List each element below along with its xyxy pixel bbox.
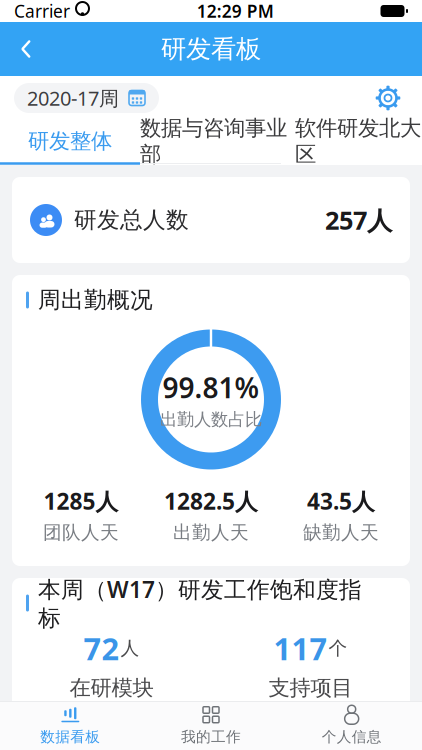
staticText: 出勤人天 <box>173 521 249 544</box>
staticText: 72 <box>83 628 119 669</box>
button[interactable]: 数据与咨询事业部 <box>140 120 287 162</box>
button[interactable]: 数据看板 <box>0 702 141 750</box>
staticText: 1282.5人 <box>164 486 258 516</box>
staticText: 个人信息 <box>322 728 382 746</box>
staticText: 个 <box>328 637 347 660</box>
staticText: 支持项目 <box>268 675 352 701</box>
staticText: 在研模块 <box>69 675 153 701</box>
button[interactable]: 个人信息 <box>281 702 422 750</box>
staticText: 257人 <box>325 203 392 237</box>
staticText: Carrier <box>14 0 70 22</box>
staticText: 1285人 <box>43 486 118 516</box>
staticText: 研发看板 <box>161 33 261 64</box>
staticText: 研发总人数 <box>74 206 189 234</box>
staticText: 新增及修改代码行数 <box>30 733 219 750</box>
staticText: 缺勤人天 <box>303 521 379 544</box>
staticText: 数据与咨询事业部 <box>140 115 287 167</box>
staticText: 软件研发北大区 <box>295 115 421 167</box>
staticText: 出勤人数占比 <box>160 409 262 430</box>
staticText: 研发整体 <box>28 128 112 154</box>
staticText: 99.81% <box>162 369 259 406</box>
button[interactable]: 2020-17周 <box>14 83 159 113</box>
staticText: 本周（W17）研发工作饱和度指标 <box>38 574 362 632</box>
button[interactable]: Settings <box>368 78 408 118</box>
staticText: 人 <box>120 637 139 660</box>
staticText: 团队人天 <box>43 521 119 544</box>
button[interactable]: 软件研发北大区 <box>287 120 421 162</box>
staticText: 12:29 PM <box>197 0 274 22</box>
button[interactable]: 我的工作 <box>141 702 281 750</box>
staticText: 43.5人 <box>307 486 375 516</box>
staticText: 周出勤概况 <box>38 286 153 314</box>
staticText: 2020-17周 <box>27 85 119 111</box>
button[interactable]: Back <box>0 22 52 76</box>
staticText: 我的工作 <box>181 728 241 746</box>
button[interactable]: 研发整体 <box>0 120 140 162</box>
staticText: 117 <box>273 628 327 669</box>
staticText: 数据看板 <box>40 728 100 746</box>
